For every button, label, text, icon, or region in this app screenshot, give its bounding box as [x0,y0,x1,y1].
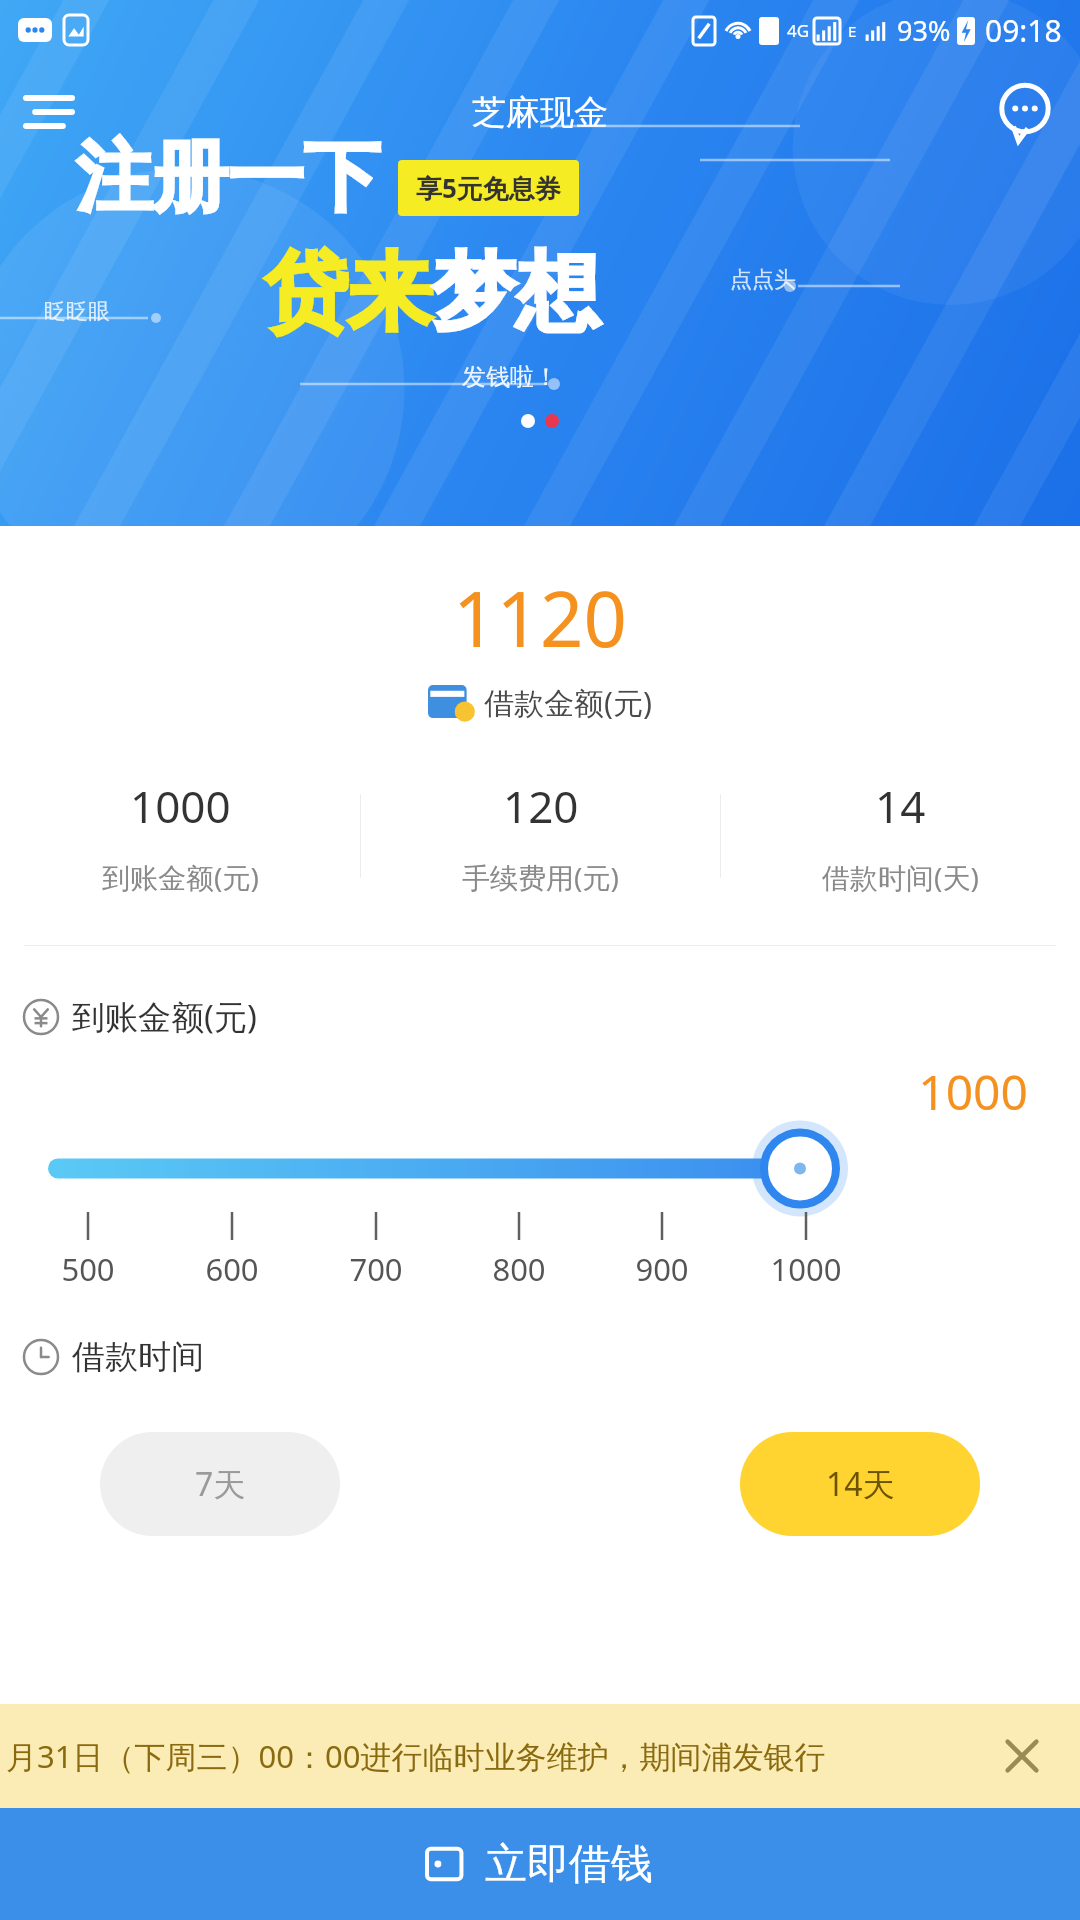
staticText: 借款金额(元) [484,682,652,723]
staticText: 享5元免息券 [416,170,561,206]
staticText: 借款时间(天) [822,858,979,896]
staticText: 500 [18,1248,158,1290]
staticText: 14 [875,776,926,836]
button[interactable]: Chat [990,80,1054,144]
staticText: 梦想 [432,240,600,346]
staticText: 93% [897,12,951,49]
staticText: 芝麻现金 [472,91,608,134]
staticText: 700 [306,1248,446,1290]
staticText: 到账金额(元) [102,858,259,896]
staticText: 800 [449,1248,589,1290]
staticText: 09:18 [985,10,1062,51]
staticText: 1000 [130,776,231,836]
staticText: 600 [162,1248,302,1290]
staticText: 眨眨眼 [44,298,110,326]
staticText: E [848,21,857,41]
staticText: 贷来 [264,240,432,346]
staticText: 手续费用(元) [462,858,619,896]
staticText: 900 [592,1248,732,1290]
staticText: 注册一下 [76,130,380,226]
button[interactable]: 14天 [740,1432,980,1536]
button[interactable] [0,1130,1080,1210]
staticText: 4G [787,19,810,42]
staticText: 点点头 [730,266,796,294]
staticText: 1000 [736,1248,876,1290]
staticText: 立即借钱 [485,1838,653,1891]
staticText: 120 [503,776,579,836]
button[interactable]: Menu [26,80,90,144]
button[interactable]: 立即借钱 [0,1808,1080,1920]
staticText: 1000 [0,1059,1028,1124]
staticText: 发钱啦！ [462,362,558,392]
staticText: 1120 [0,566,1080,670]
staticText: 7天 [195,1462,246,1506]
staticText: 到账金额(元) [72,994,257,1039]
button[interactable]: Close notice [990,1724,1054,1788]
staticText: 借款时间 [72,1336,204,1378]
staticText: 14天 [826,1462,895,1506]
button[interactable]: 7天 [100,1432,340,1536]
staticText: 月31日（下周三）00：00进行临时业务维护，期间浦发银行 [6,1735,826,1777]
